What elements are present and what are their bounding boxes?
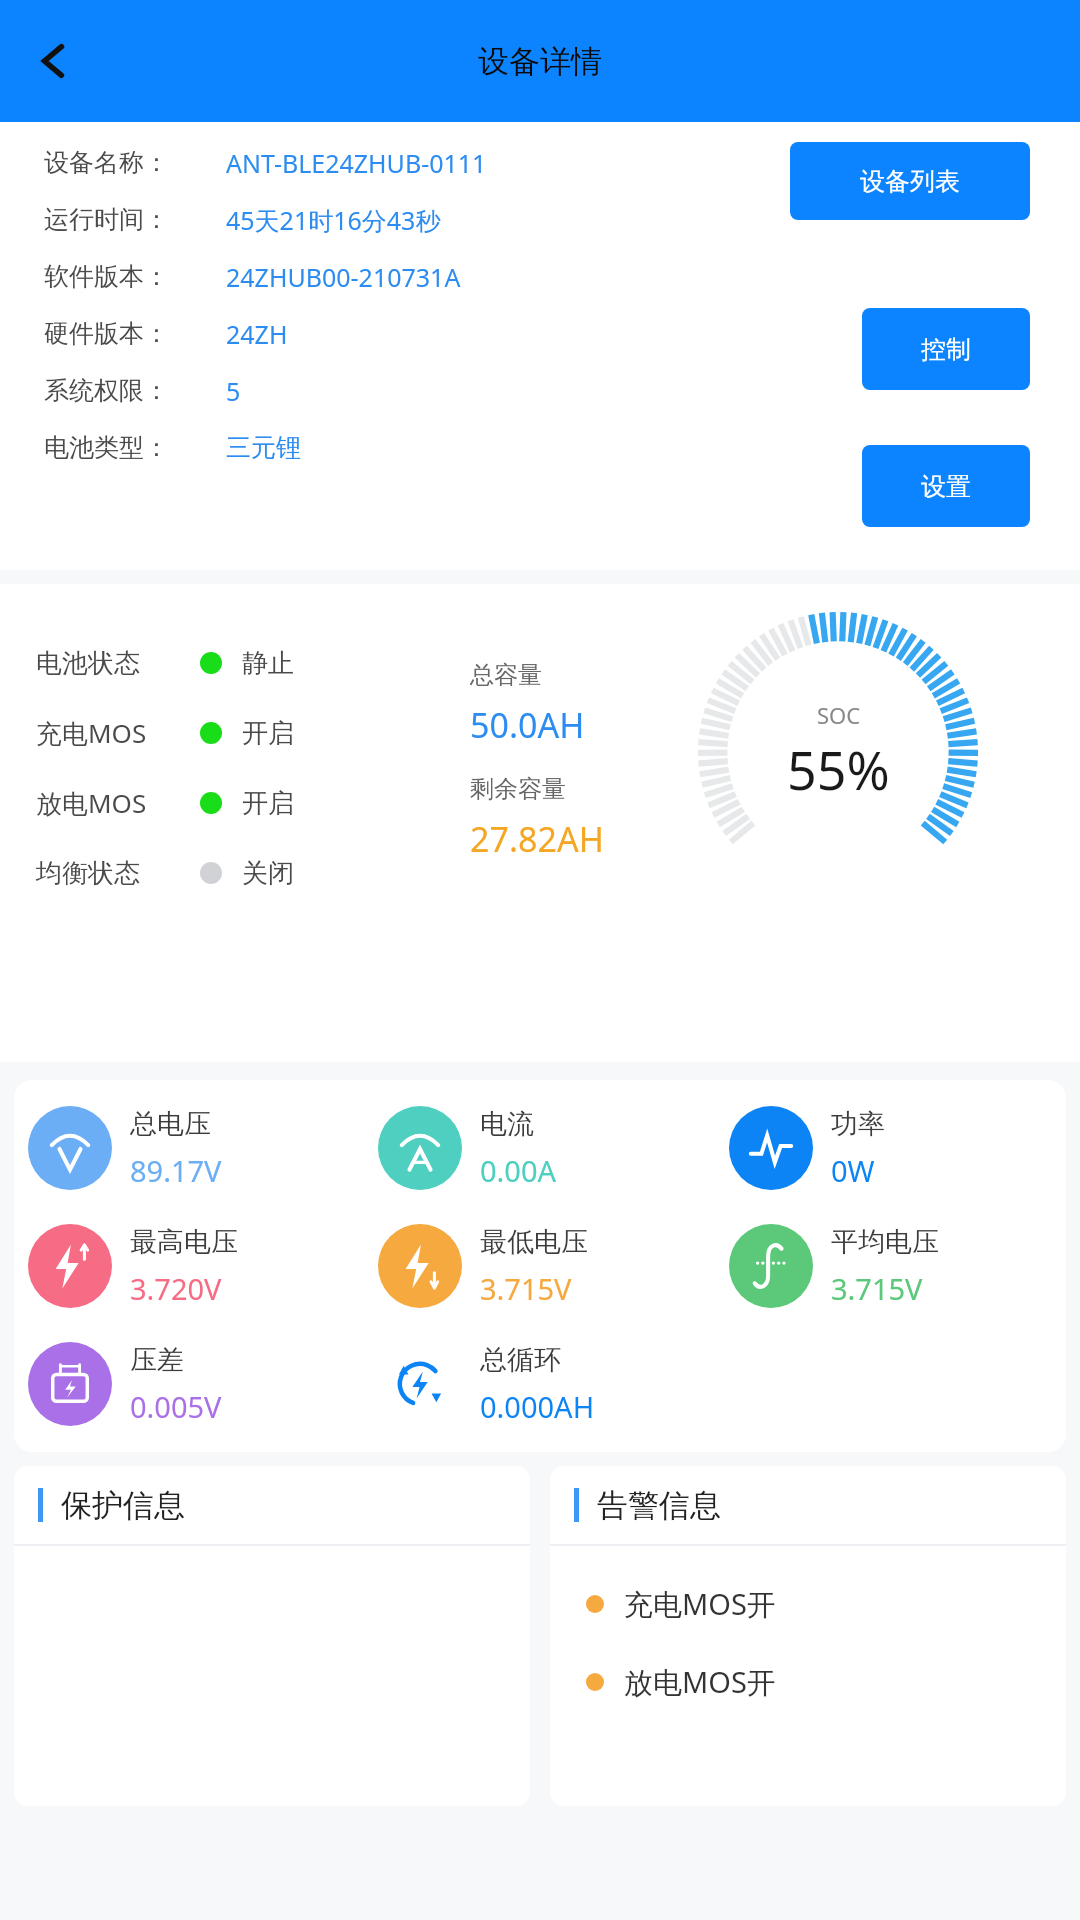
staticText: 27.82AH xyxy=(470,816,604,862)
staticText: 硬件版本： xyxy=(44,318,226,349)
button[interactable]: 总循环 xyxy=(364,1342,715,1426)
button[interactable]: 控制 xyxy=(862,308,1030,390)
staticText: 0.00A xyxy=(480,1151,557,1190)
staticText: 剩余容量 xyxy=(470,774,566,804)
button[interactable]: 设置 xyxy=(862,445,1030,527)
button[interactable]: 设备列表 xyxy=(790,142,1030,220)
staticText: 0.000AH xyxy=(480,1387,595,1426)
staticText: 总容量 xyxy=(470,660,542,690)
staticText: 3.715V xyxy=(831,1269,923,1308)
staticText: 充电MOS开 xyxy=(624,1584,776,1624)
staticText: 控制 xyxy=(921,334,971,365)
staticText: 关闭 xyxy=(242,857,294,890)
staticText: 5 xyxy=(226,374,241,408)
staticText: 24ZH xyxy=(226,317,288,351)
staticText: 最高电压 xyxy=(130,1225,238,1259)
staticText: 放电MOS开 xyxy=(624,1662,776,1702)
button[interactable]: 电流 xyxy=(364,1106,715,1190)
staticText: 平均电压 xyxy=(831,1225,939,1259)
staticText: 55% xyxy=(787,734,890,805)
staticText: 设备列表 xyxy=(860,166,960,197)
staticText: 电流 xyxy=(480,1107,534,1141)
staticText: 开启 xyxy=(242,787,294,820)
staticText: ANT-BLE24ZHUB-0111 xyxy=(226,146,487,180)
staticText: 充电MOS xyxy=(36,715,200,751)
staticText: 系统权限： xyxy=(44,375,226,406)
staticText: 软件版本： xyxy=(44,261,226,292)
staticText: 总循环 xyxy=(480,1343,561,1377)
staticText: 3.715V xyxy=(480,1269,572,1308)
button[interactable]: 总电压 xyxy=(14,1106,364,1190)
staticText: 设备名称： xyxy=(44,147,226,178)
staticText: 3.720V xyxy=(130,1269,222,1308)
staticText: 电池类型： xyxy=(44,432,226,463)
staticText: 压差 xyxy=(130,1343,184,1377)
staticText: 45天21时16分43秒 xyxy=(226,203,441,237)
staticText: 电池状态 xyxy=(36,647,200,680)
button[interactable]: 平均电压 xyxy=(715,1224,1066,1308)
staticText: 均衡状态 xyxy=(36,857,200,890)
staticText: 运行时间： xyxy=(44,204,226,235)
staticText: 89.17V xyxy=(130,1151,222,1190)
staticText: 0W xyxy=(831,1151,875,1190)
staticText: 0.005V xyxy=(130,1387,222,1426)
staticText: 放电MOS xyxy=(36,785,200,821)
staticText: 50.0AH xyxy=(470,702,585,748)
staticText: 功率 xyxy=(831,1107,885,1141)
staticText: 24ZHUB00-210731A xyxy=(226,260,461,294)
staticText: 三元锂 xyxy=(226,432,301,463)
staticText: SOC xyxy=(817,700,861,730)
staticText: 设置 xyxy=(921,471,971,502)
button[interactable]: 最低电压 xyxy=(364,1224,715,1308)
staticText: 保护信息 xyxy=(61,1486,185,1525)
button[interactable]: 功率 xyxy=(715,1106,1066,1190)
button[interactable]: 压差 xyxy=(14,1342,364,1426)
staticText: 设备详情 xyxy=(478,42,602,81)
staticText: 静止 xyxy=(242,647,294,680)
button[interactable]: 最高电压 xyxy=(14,1224,364,1308)
staticText: 最低电压 xyxy=(480,1225,588,1259)
staticText: 告警信息 xyxy=(597,1486,721,1525)
staticText: 开启 xyxy=(242,717,294,750)
staticText: 总电压 xyxy=(130,1107,211,1141)
button[interactable]: Back xyxy=(22,29,86,93)
